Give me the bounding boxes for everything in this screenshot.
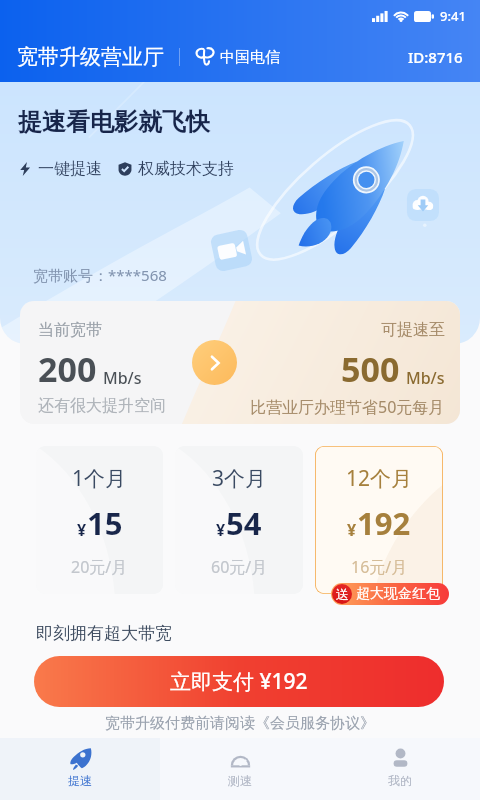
staticText: 192 xyxy=(357,502,411,544)
button[interactable]: 测速 xyxy=(160,738,320,800)
staticText: 提速 xyxy=(68,773,92,788)
staticText: ¥ xyxy=(216,519,226,541)
button[interactable]: 送 xyxy=(332,584,440,604)
staticText: 中国电信 xyxy=(220,48,280,67)
staticText: 宽带账号：****568 xyxy=(33,265,167,285)
staticText: 20元/月 xyxy=(71,556,128,578)
staticText: 当前宽带 xyxy=(38,320,102,340)
staticText: 60元/月 xyxy=(211,556,268,578)
staticText: ID:8716 xyxy=(408,47,463,67)
button[interactable]: 宽带升级付费前请阅读《会员服务协议》 xyxy=(0,714,480,733)
staticText: 超大现金红包 xyxy=(356,585,440,603)
staticText: 可提速至 xyxy=(381,320,445,340)
button[interactable]: 3个月 xyxy=(175,446,303,594)
staticText: 9:41 xyxy=(440,7,466,25)
staticText: ¥ xyxy=(77,519,87,541)
staticText: 立即支付 ¥192 xyxy=(170,667,308,696)
button[interactable]: 升级提速 xyxy=(192,340,237,385)
button[interactable]: 立即支付 ¥192 xyxy=(34,656,444,707)
button[interactable]: 当前宽带 xyxy=(20,301,460,424)
staticText: ¥ xyxy=(347,519,357,541)
staticText: 比营业厅办理节省50元每月 xyxy=(250,396,445,418)
staticText: 200 xyxy=(38,346,97,392)
staticText: Mb/s xyxy=(103,367,142,389)
staticText: 12个月 xyxy=(346,464,413,493)
staticText: 还有很大提升空间 xyxy=(38,396,166,416)
staticText: 提速看电影就飞快 xyxy=(18,107,210,137)
staticText: Mb/s xyxy=(406,367,445,389)
staticText: 送 xyxy=(336,586,349,602)
staticText: 即刻拥有超大带宽 xyxy=(36,623,172,644)
button[interactable]: 提速 xyxy=(0,738,160,800)
staticText: 15 xyxy=(87,502,123,544)
button[interactable]: 1个月 xyxy=(36,446,163,594)
staticText: 权威技术支持 xyxy=(138,159,234,179)
staticText: 1个月 xyxy=(72,464,127,493)
staticText: 3个月 xyxy=(212,464,267,493)
staticText: 测速 xyxy=(228,773,252,788)
staticText: 我的 xyxy=(388,773,412,788)
button[interactable]: 12个月 xyxy=(315,446,443,594)
button[interactable]: 我的 xyxy=(320,738,480,800)
staticText: 500 xyxy=(341,346,400,392)
staticText: 16元/月 xyxy=(351,556,408,578)
staticText: 宽带升级营业厅 xyxy=(17,44,164,70)
staticText: 54 xyxy=(226,502,262,544)
staticText: 一键提速 xyxy=(38,159,102,179)
